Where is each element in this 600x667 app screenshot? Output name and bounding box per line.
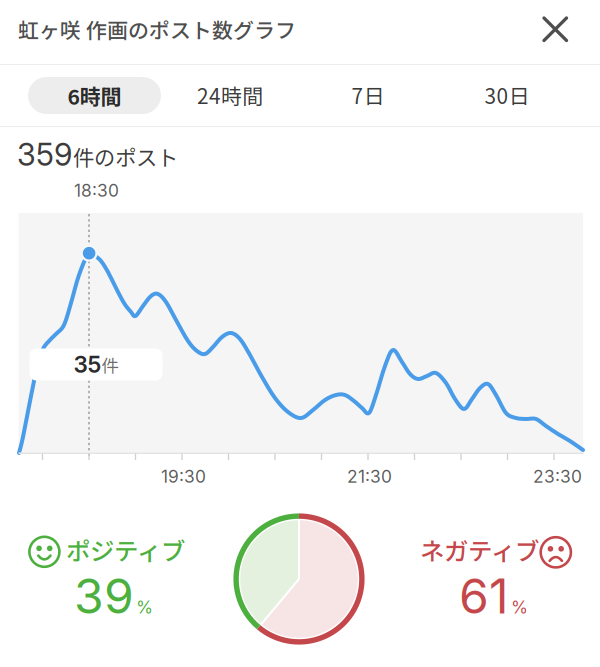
staticText: ポジティブ bbox=[66, 532, 185, 567]
button[interactable]: 閉じる bbox=[532, 6, 577, 51]
staticText: 件のポスト bbox=[73, 141, 178, 172]
staticText: 18:30 bbox=[74, 180, 119, 201]
staticText: 件 bbox=[101, 353, 118, 378]
staticText: % bbox=[511, 597, 528, 618]
staticText: 39 bbox=[74, 567, 134, 625]
staticText: 23:30 bbox=[533, 466, 582, 487]
staticText: 虹ヶ咲 作画のポスト数グラフ bbox=[18, 14, 296, 44]
button[interactable]: 7日 bbox=[323, 77, 413, 113]
staticText: 7日 bbox=[351, 80, 384, 110]
button[interactable]: 30日 bbox=[462, 77, 552, 113]
button[interactable]: 24時間 bbox=[175, 77, 285, 113]
staticText: 35 bbox=[73, 351, 101, 378]
staticText: 24時間 bbox=[197, 80, 263, 110]
staticText: 61 bbox=[459, 567, 509, 625]
staticText: 21:30 bbox=[347, 466, 392, 487]
staticText: 359 bbox=[17, 136, 72, 173]
staticText: ネガティブ bbox=[420, 532, 539, 567]
staticText: % bbox=[136, 597, 153, 618]
staticText: 30日 bbox=[484, 80, 529, 110]
button[interactable]: 6時間 bbox=[28, 77, 161, 114]
staticText: 6時間 bbox=[67, 80, 121, 111]
staticText: 19:30 bbox=[161, 466, 206, 487]
